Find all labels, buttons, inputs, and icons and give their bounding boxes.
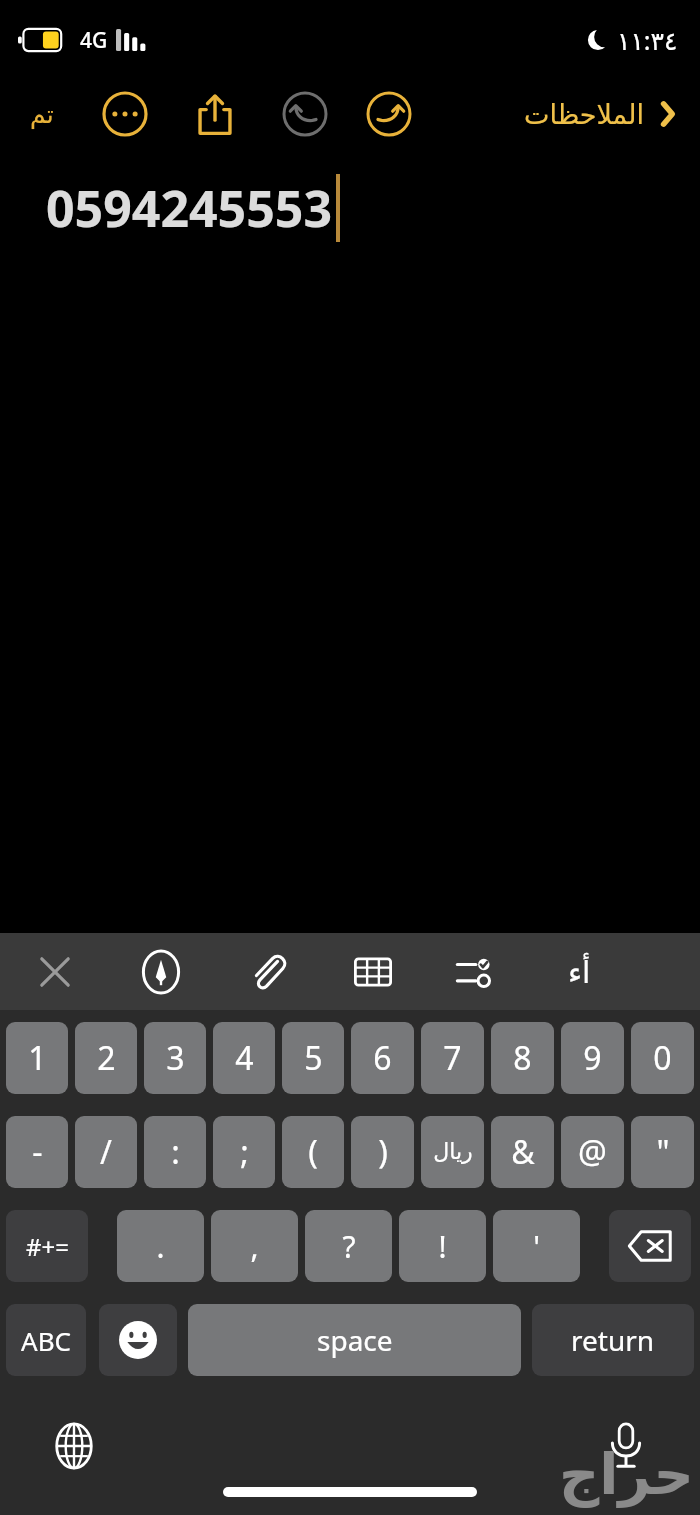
button[interactable]: 0 [631,1022,694,1094]
button[interactable]: Checklist [446,943,504,1001]
button[interactable]: , [211,1210,298,1282]
button[interactable]: space [188,1304,521,1376]
button[interactable]: Emoji [99,1304,177,1376]
button[interactable]: . [117,1210,204,1282]
button[interactable]: تم [16,88,68,140]
button[interactable]: Table [344,943,402,1001]
staticText: 0594245553 [46,174,332,242]
staticText: - [32,1130,43,1174]
staticText: الملاحظات [524,99,644,130]
button[interactable]: ) [351,1116,414,1188]
button[interactable]: ? [305,1210,392,1282]
button[interactable]: Dictation [598,1418,654,1474]
button[interactable]: 2 [75,1022,137,1094]
staticText: & [511,1130,535,1174]
staticText: , [250,1226,259,1267]
staticText: 7 [443,1036,462,1080]
button[interactable]: 4 [213,1022,275,1094]
staticText: تم [30,100,54,129]
button[interactable]: الملاحظات [524,97,686,131]
staticText: 4G [80,26,108,55]
button[interactable]: 3 [144,1022,206,1094]
button[interactable]: Undo [278,87,332,141]
button[interactable]: ! [399,1210,486,1282]
staticText: ? [342,1226,356,1267]
staticText: ( [308,1130,318,1174]
staticText: 2 [97,1036,116,1080]
staticText: 8 [513,1036,532,1080]
button[interactable]: ; [213,1116,275,1188]
button[interactable]: 6 [351,1022,414,1094]
button[interactable]: ( [282,1116,344,1188]
staticText: ١١:٣٤ [617,23,678,57]
staticText: 1 [28,1036,47,1080]
staticText: @ [578,1130,607,1174]
button[interactable]: 1 [6,1022,68,1094]
button[interactable]: 8 [491,1022,554,1094]
button[interactable]: @ [561,1116,624,1188]
button[interactable]: / [75,1116,137,1188]
button[interactable]: 9 [561,1022,624,1094]
staticText: 3 [166,1036,185,1080]
button[interactable]: Attach [238,943,296,1001]
button[interactable]: : [144,1116,206,1188]
button[interactable]: Redo [362,87,416,141]
button[interactable]: أء [550,943,608,1001]
button[interactable]: More options [98,87,152,141]
staticText: 6 [373,1036,392,1080]
button[interactable]: - [6,1116,68,1188]
staticText: حراج [559,1442,694,1507]
staticText: space [317,1321,393,1359]
staticText: 9 [583,1036,602,1080]
staticText: ) [378,1130,388,1174]
staticText: return [571,1321,655,1359]
staticText: أء [568,955,591,990]
staticText: 4 [235,1036,254,1080]
button[interactable]: " [631,1116,694,1188]
staticText: #+= [26,1230,69,1263]
staticText: ABC [21,1323,71,1358]
button[interactable]: 5 [282,1022,344,1094]
staticText: . [156,1226,165,1267]
button[interactable]: 7 [421,1022,484,1094]
button[interactable]: ABC [6,1304,86,1376]
staticText: ; [240,1130,249,1174]
button[interactable]: ريال [421,1116,484,1188]
staticText: / [100,1130,112,1174]
button[interactable]: ' [493,1210,580,1282]
button[interactable]: #+= [6,1210,88,1282]
button[interactable]: Share [188,87,242,141]
staticText: 0 [653,1036,672,1080]
button[interactable]: Change keyboard language [46,1418,102,1474]
button[interactable]: Close [26,943,84,1001]
staticText: : [171,1130,180,1174]
staticText: ! [438,1226,447,1267]
staticText: ريال [433,1139,473,1165]
button[interactable]: & [491,1116,554,1188]
staticText: " [656,1130,670,1174]
staticText: 5 [304,1036,323,1080]
button[interactable]: Backspace [609,1210,691,1282]
staticText: ' [533,1226,540,1267]
button[interactable]: return [532,1304,694,1376]
button[interactable]: Markup [132,943,190,1001]
